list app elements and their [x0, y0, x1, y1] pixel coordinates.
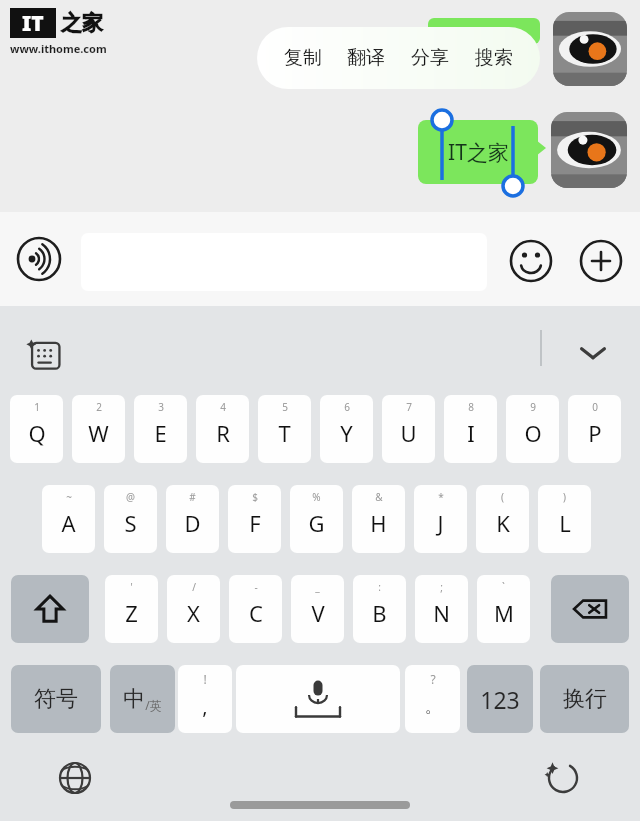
- button[interactable]: IT之家: [418, 120, 538, 184]
- staticText: M: [494, 598, 514, 628]
- button[interactable]: Switch language: [52, 755, 98, 801]
- button[interactable]: 翻译: [334, 27, 398, 89]
- button[interactable]: Space: [236, 665, 400, 733]
- staticText: 换行: [563, 685, 607, 713]
- staticText: ;: [440, 580, 443, 594]
- button[interactable]: @: [104, 485, 157, 553]
- staticText: -: [254, 580, 258, 594]
- button[interactable]: #: [166, 485, 219, 553]
- staticText: 6: [344, 400, 350, 414]
- staticText: ~: [66, 490, 72, 504]
- staticText: 2: [96, 400, 102, 414]
- button[interactable]: 123: [467, 665, 533, 733]
- staticText: J: [437, 508, 444, 538]
- button[interactable]: Voice message: [16, 236, 62, 282]
- button[interactable]: Backspace: [551, 575, 629, 643]
- staticText: 7: [406, 400, 412, 414]
- button[interactable]: *: [414, 485, 467, 553]
- staticText: 123: [480, 684, 520, 715]
- staticText: :: [378, 580, 381, 594]
- staticText: 翻译: [347, 46, 385, 70]
- button[interactable]: 0: [568, 395, 621, 463]
- button[interactable]: ~: [42, 485, 95, 553]
- staticText: T: [278, 418, 291, 448]
- staticText: G: [308, 508, 325, 538]
- staticText: Q: [28, 418, 46, 448]
- staticText: F: [249, 508, 261, 538]
- button[interactable]: ): [538, 485, 591, 553]
- staticText: 。: [425, 697, 441, 717]
- staticText: K: [496, 508, 510, 538]
- staticText: ,: [202, 693, 208, 720]
- button[interactable]: More: [576, 236, 626, 286]
- staticText: N: [433, 598, 450, 628]
- staticText: @: [126, 490, 135, 504]
- button[interactable]: 3: [134, 395, 187, 463]
- staticText: R: [216, 418, 230, 448]
- button[interactable]: 8: [444, 395, 497, 463]
- staticText: P: [588, 418, 602, 448]
- staticText: Y: [340, 418, 353, 448]
- staticText: &: [375, 490, 383, 504]
- staticText: 分享: [411, 46, 449, 70]
- staticText: H: [370, 508, 387, 538]
- button[interactable]: Hide keyboard: [570, 330, 616, 376]
- button[interactable]: 符号: [11, 665, 101, 733]
- staticText: A: [61, 508, 76, 538]
- staticText: ): [563, 490, 566, 504]
- button[interactable]: 中: [110, 665, 175, 733]
- staticText: 5: [282, 400, 288, 414]
- staticText: $: [252, 490, 258, 504]
- button[interactable]: Smart keyboard: [22, 332, 68, 378]
- button[interactable]: 复制: [271, 27, 334, 89]
- button[interactable]: 9: [506, 395, 559, 463]
- button[interactable]: $: [228, 485, 281, 553]
- staticText: /: [192, 580, 196, 594]
- button[interactable]: 分享: [398, 27, 462, 89]
- button[interactable]: (: [476, 485, 529, 553]
- button[interactable]: ': [105, 575, 158, 643]
- staticText: *: [438, 490, 444, 504]
- staticText: 0: [592, 400, 598, 414]
- button[interactable]: /: [167, 575, 220, 643]
- staticText: /英: [145, 697, 162, 713]
- button[interactable]: 换行: [540, 665, 629, 733]
- button[interactable]: 2: [72, 395, 125, 463]
- staticText: 9: [530, 400, 536, 414]
- staticText: ?: [430, 671, 436, 687]
- button[interactable]: _: [291, 575, 344, 643]
- button[interactable]: ?: [405, 665, 460, 733]
- button[interactable]: 搜索: [462, 27, 526, 89]
- button[interactable]: 5: [258, 395, 311, 463]
- staticText: 1: [34, 400, 40, 414]
- button[interactable]: Shift: [11, 575, 89, 643]
- staticText: !: [203, 671, 207, 687]
- staticText: 搜索: [475, 46, 513, 70]
- staticText: 中: [123, 685, 145, 713]
- button[interactable]: &: [352, 485, 405, 553]
- staticText: U: [400, 418, 417, 448]
- staticText: 复制: [284, 46, 322, 70]
- staticText: IT: [22, 9, 44, 38]
- button[interactable]: `: [477, 575, 530, 643]
- staticText: O: [524, 418, 542, 448]
- button[interactable]: !: [178, 665, 232, 733]
- staticText: D: [184, 508, 201, 538]
- staticText: I: [467, 418, 475, 448]
- staticText: www.ithome.com: [10, 41, 107, 56]
- staticText: `: [502, 580, 505, 594]
- button[interactable]: -: [229, 575, 282, 643]
- button[interactable]: Undo: [540, 755, 586, 801]
- button[interactable]: 1: [10, 395, 63, 463]
- button[interactable]: 7: [382, 395, 435, 463]
- button[interactable]: Emoji: [506, 236, 556, 286]
- staticText: (: [501, 490, 504, 504]
- staticText: V: [311, 598, 325, 628]
- button[interactable]: 6: [320, 395, 373, 463]
- button[interactable]: %: [290, 485, 343, 553]
- button[interactable]: :: [353, 575, 406, 643]
- staticText: 之家: [61, 10, 103, 36]
- button[interactable]: 4: [196, 395, 249, 463]
- button[interactable]: ;: [415, 575, 468, 643]
